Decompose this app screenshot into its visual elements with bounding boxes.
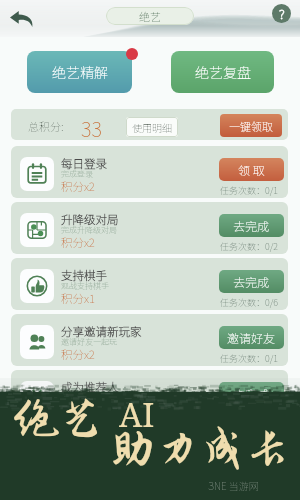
staticText: 积分x1 <box>61 290 95 307</box>
button[interactable]: 使用明细 <box>126 117 178 137</box>
staticText: 任务次数：0/2 <box>211 240 287 253</box>
staticText: 成为推荐人 <box>61 379 119 396</box>
button[interactable]: 领 取 <box>219 158 284 181</box>
button[interactable]: 去完成 <box>219 382 284 405</box>
staticText: 任务次数：0/6 <box>211 296 287 309</box>
button[interactable]: 邀请好友 <box>219 326 284 349</box>
staticText: 使用明细 <box>132 120 172 134</box>
staticText: 邀请好友 <box>227 329 276 346</box>
staticText: 观战支持棋手 <box>61 280 109 292</box>
staticText: 绝艺 <box>139 8 161 24</box>
staticText: 支持棋手 <box>61 267 107 284</box>
staticText: 绝艺精解 <box>52 62 108 82</box>
staticText: 总积分: <box>28 118 64 134</box>
staticText: 升降级对局 <box>61 211 119 228</box>
button[interactable]: 支持棋手 <box>11 258 288 310</box>
button[interactable]: 绝艺精解 <box>27 51 132 93</box>
button[interactable]: 成为推荐人 <box>11 370 288 422</box>
staticText: 每日登录 <box>61 155 107 172</box>
button[interactable]: 升降级对局 <box>11 202 288 254</box>
staticText: ? <box>279 4 285 23</box>
staticText: 一键领取 <box>229 118 273 134</box>
button[interactable]: Help <box>272 4 291 23</box>
staticText: 积分x5 <box>61 402 95 419</box>
staticText: AI <box>119 392 155 437</box>
button[interactable]: 分享邀请新玩家 <box>11 314 288 366</box>
staticText: 33 <box>81 114 102 140</box>
staticText: 绝艺复盘 <box>195 62 251 82</box>
staticText: 一个月内邀请5位新用户 <box>61 392 146 404</box>
staticText: ЗNE 当游网 <box>208 478 259 492</box>
button[interactable]: 每日登录 <box>11 146 288 198</box>
button[interactable]: 绝艺 <box>106 7 194 25</box>
staticText: 去完成 <box>233 385 270 402</box>
staticText: 去完成 <box>233 217 270 234</box>
staticText: 分享邀请新玩家 <box>61 323 142 340</box>
staticText: 绝艺 <box>14 394 104 444</box>
staticText: 任务次数：0/1 <box>211 184 287 197</box>
button[interactable]: 绝艺复盘 <box>171 51 274 93</box>
staticText: 完成登录 <box>61 168 93 180</box>
staticText: 完成升降级对局 <box>61 224 117 236</box>
button[interactable]: 一键领取 <box>220 114 282 137</box>
staticText: 积分x2 <box>61 346 95 363</box>
staticText: 助力成长 <box>110 424 290 474</box>
button[interactable]: Back <box>6 6 36 32</box>
staticText: 去完成 <box>233 273 270 290</box>
staticText: 积分x2 <box>61 234 95 251</box>
staticText: 积分x2 <box>61 178 95 195</box>
button[interactable]: 去完成 <box>219 214 284 237</box>
staticText: 领 取 <box>238 161 265 178</box>
staticText: 任务次数：0/1 <box>211 352 287 365</box>
button[interactable]: 去完成 <box>219 270 284 293</box>
staticText: 邀请好友一起玩 <box>61 336 117 348</box>
